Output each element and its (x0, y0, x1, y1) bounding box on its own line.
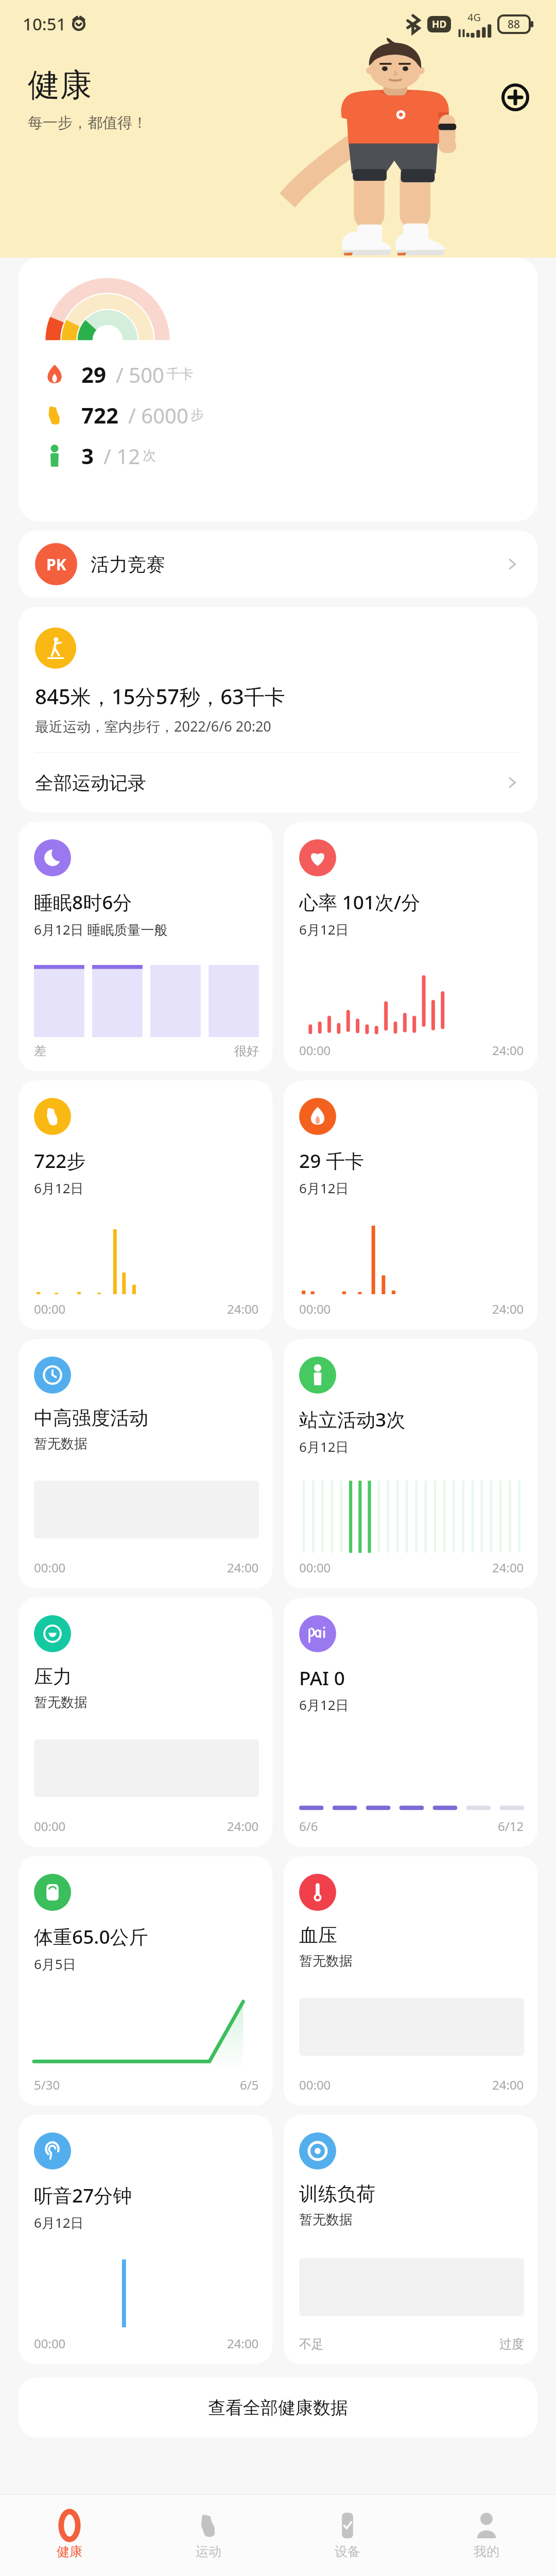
button[interactable]: 听音27分钟 (19, 2115, 272, 2364)
staticText: / 12 (103, 442, 141, 470)
staticText: 最近运动，室内步行，2022/6/6 20:20 (35, 717, 271, 736)
staticText: 我的 (474, 2544, 499, 2560)
staticText: 设备 (335, 2544, 360, 2560)
staticText: / 500 (116, 361, 164, 388)
staticText: 6/6 (299, 1818, 318, 1835)
staticText: 很好 (234, 1043, 259, 1059)
button[interactable]: 29 千卡 (284, 1080, 537, 1330)
staticText: 00:00 (299, 1300, 331, 1317)
staticText: 活力竞赛 (91, 553, 165, 576)
staticText: 千卡 (166, 366, 193, 383)
staticText: 每一步，都值得！ (28, 113, 147, 132)
staticText: 6月5日 (34, 1955, 76, 1973)
staticText: 00:00 (34, 1300, 66, 1317)
staticText: 845米，15分57秒，63千卡 (35, 682, 285, 710)
staticText: 听音27分钟 (34, 2182, 132, 2208)
button[interactable]: 722步 (19, 1080, 272, 1330)
staticText: 00:00 (34, 1818, 66, 1835)
staticText: 10:51 (23, 12, 66, 36)
staticText: 24:00 (227, 1818, 259, 1835)
button[interactable]: 训练负荷 (284, 2115, 537, 2364)
staticText: 722 (81, 400, 119, 430)
staticText: PK (46, 554, 66, 575)
button[interactable]: PAI 0 (284, 1598, 537, 1847)
staticText: 6月12日 (34, 2213, 84, 2232)
button[interactable]: 血压 (284, 1856, 537, 2106)
staticText: 运动 (196, 2544, 221, 2560)
button[interactable]: 健康 (0, 2495, 139, 2576)
staticText: 29 千卡 (299, 1147, 364, 1174)
button[interactable]: 站立活动3次 (284, 1339, 537, 1588)
staticText: 6月12日 睡眠质量一般 (34, 920, 168, 939)
button[interactable]: 我的 (417, 2495, 556, 2576)
staticText: 24:00 (492, 1300, 524, 1317)
staticText: 6/5 (240, 2076, 259, 2093)
staticText: 6月12日 (34, 1179, 84, 1197)
button[interactable]: PK (19, 531, 537, 598)
staticText: / 6000 (128, 401, 188, 429)
staticText: 6月12日 (299, 920, 349, 939)
staticText: 血压 (299, 1923, 337, 1947)
staticText: 体重65.0公斤 (34, 1923, 148, 1950)
staticText: 健康 (28, 65, 92, 105)
staticText: 查看全部健康数据 (208, 2397, 348, 2419)
staticText: 6月12日 (299, 1179, 349, 1197)
staticText: PAI 0 (299, 1665, 345, 1690)
button[interactable]: 全部运动记录 (19, 753, 537, 812)
staticText: 00:00 (299, 1559, 331, 1576)
staticText: 00:00 (299, 1042, 331, 1059)
staticText: 暂无数据 (299, 1953, 353, 1970)
staticText: 88 (508, 17, 520, 32)
staticText: 00:00 (34, 2335, 66, 2352)
staticText: 过度 (499, 2336, 524, 2352)
button[interactable]: Add (495, 77, 535, 117)
staticText: 24:00 (227, 2335, 259, 2352)
staticText: 次 (143, 447, 156, 464)
staticText: 5/30 (34, 2076, 60, 2093)
staticText: 6/12 (498, 1818, 524, 1835)
button[interactable]: 运动 (139, 2495, 278, 2576)
staticText: 差 (34, 1043, 46, 1059)
staticText: 暂无数据 (299, 2211, 353, 2228)
staticText: 训练负荷 (299, 2182, 375, 2206)
button[interactable]: 29 (19, 258, 537, 521)
staticText: 全部运动记录 (35, 771, 146, 794)
staticText: 29 (81, 360, 107, 389)
button[interactable]: 查看全部健康数据 (19, 2378, 537, 2437)
staticText: 24:00 (492, 1559, 524, 1576)
staticText: 24:00 (227, 1559, 259, 1576)
staticText: 722步 (34, 1147, 86, 1174)
button[interactable]: 中高强度活动 (19, 1339, 272, 1588)
button[interactable]: 设备 (278, 2495, 417, 2576)
staticText: 24:00 (492, 2076, 524, 2093)
button[interactable]: 845米，15分57秒，63千卡 (19, 607, 537, 752)
staticText: 4G (467, 10, 481, 24)
staticText: 压力 (34, 1665, 72, 1689)
staticText: 暂无数据 (34, 1694, 88, 1711)
staticText: 不足 (299, 2336, 324, 2352)
staticText: 心率 101次/分 (299, 889, 421, 915)
staticText: 00:00 (299, 2076, 331, 2093)
staticText: 暂无数据 (34, 1435, 88, 1452)
button[interactable]: 体重65.0公斤 (19, 1856, 272, 2106)
staticText: 24:00 (492, 1042, 524, 1059)
button[interactable]: 睡眠8时6分 (19, 822, 272, 1071)
staticText: 步 (190, 406, 204, 423)
staticText: 6月12日 (299, 1696, 349, 1714)
staticText: 24:00 (227, 1300, 259, 1317)
staticText: 3 (81, 441, 94, 470)
staticText: 中高强度活动 (34, 1406, 148, 1430)
staticText: 睡眠8时6分 (34, 889, 132, 915)
staticText: 6月12日 (299, 1437, 349, 1456)
staticText: HD (432, 18, 447, 31)
button[interactable]: 压力 (19, 1598, 272, 1847)
staticText: 站立活动3次 (299, 1406, 406, 1432)
staticText: 健康 (57, 2544, 82, 2560)
staticText: 00:00 (34, 1559, 66, 1576)
button[interactable]: 心率 101次/分 (284, 822, 537, 1071)
